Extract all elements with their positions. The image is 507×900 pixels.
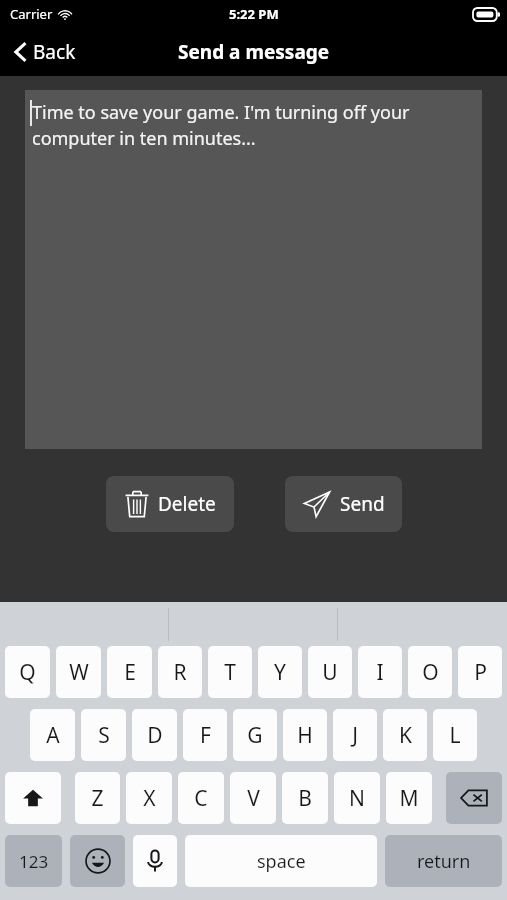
staticText: 5:22 PM — [229, 5, 279, 23]
button[interactable]: space — [185, 835, 377, 887]
staticText: Q — [19, 658, 36, 687]
button[interactable]: X — [126, 772, 172, 824]
button[interactable]: C — [178, 772, 224, 824]
staticText: Time to save your game. I'm turning off … — [32, 100, 472, 151]
staticText: H — [297, 721, 313, 750]
button[interactable]: Send — [285, 476, 402, 532]
staticText: return — [417, 849, 471, 874]
button[interactable]: O — [408, 646, 452, 698]
staticText: L — [449, 721, 461, 750]
button[interactable]: R — [158, 646, 202, 698]
staticText: W — [69, 658, 89, 687]
staticText: Z — [91, 784, 104, 813]
staticText: S — [98, 721, 110, 750]
button[interactable]: S — [81, 709, 126, 761]
staticText: F — [200, 721, 211, 750]
button[interactable]: N — [334, 772, 380, 824]
button[interactable]: G — [233, 709, 277, 761]
staticText: T — [224, 658, 236, 687]
staticText: A — [46, 721, 60, 750]
staticText: O — [422, 658, 439, 687]
button[interactable]: T — [208, 646, 252, 698]
button[interactable]: W — [56, 646, 101, 698]
staticText: I — [376, 658, 384, 687]
staticText: P — [474, 658, 487, 687]
button[interactable]: D — [132, 709, 177, 761]
button[interactable]: U — [308, 646, 352, 698]
button[interactable]: Z — [75, 772, 120, 824]
staticText: M — [399, 784, 419, 813]
staticText: U — [322, 658, 338, 687]
staticText: K — [399, 721, 412, 750]
staticText: Send a message — [178, 39, 330, 65]
button[interactable]: return — [385, 835, 502, 887]
button[interactable]: B — [282, 772, 328, 824]
staticText: space — [257, 849, 306, 874]
staticText: B — [298, 784, 312, 813]
button[interactable]: V — [230, 772, 276, 824]
staticText: V — [247, 784, 260, 813]
staticText: E — [124, 658, 136, 687]
staticText: 123 — [19, 850, 49, 873]
button[interactable]: Back — [0, 33, 88, 71]
button[interactable]: Dictate — [133, 835, 177, 887]
button[interactable]: Shift — [5, 772, 61, 824]
button[interactable]: L — [433, 709, 477, 761]
button[interactable]: 123 — [5, 835, 62, 887]
button[interactable]: A — [30, 709, 75, 761]
staticText: D — [147, 721, 163, 750]
button[interactable]: H — [283, 709, 327, 761]
staticText: Carrier — [10, 5, 53, 23]
staticText: C — [194, 784, 208, 813]
staticText: N — [349, 784, 365, 813]
staticText: Back — [33, 39, 76, 65]
button[interactable]: J — [333, 709, 377, 761]
staticText: R — [173, 658, 187, 687]
staticText: J — [352, 721, 358, 750]
staticText: Send — [340, 491, 385, 517]
button[interactable]: Emoji — [70, 835, 125, 887]
staticText: Y — [274, 658, 286, 687]
button[interactable]: Time to save your game. I'm turning off … — [25, 90, 482, 449]
button[interactable]: E — [107, 646, 152, 698]
button[interactable]: Delete — [106, 476, 234, 532]
button[interactable]: Backspace — [446, 772, 502, 824]
button[interactable]: Y — [258, 646, 302, 698]
button[interactable]: M — [386, 772, 432, 824]
staticText: Delete — [158, 491, 216, 517]
staticText: X — [143, 784, 156, 813]
button[interactable]: Q — [5, 646, 50, 698]
button[interactable]: K — [383, 709, 427, 761]
button[interactable]: P — [458, 646, 502, 698]
button[interactable]: F — [183, 709, 227, 761]
button[interactable]: I — [358, 646, 402, 698]
staticText: G — [247, 721, 263, 750]
